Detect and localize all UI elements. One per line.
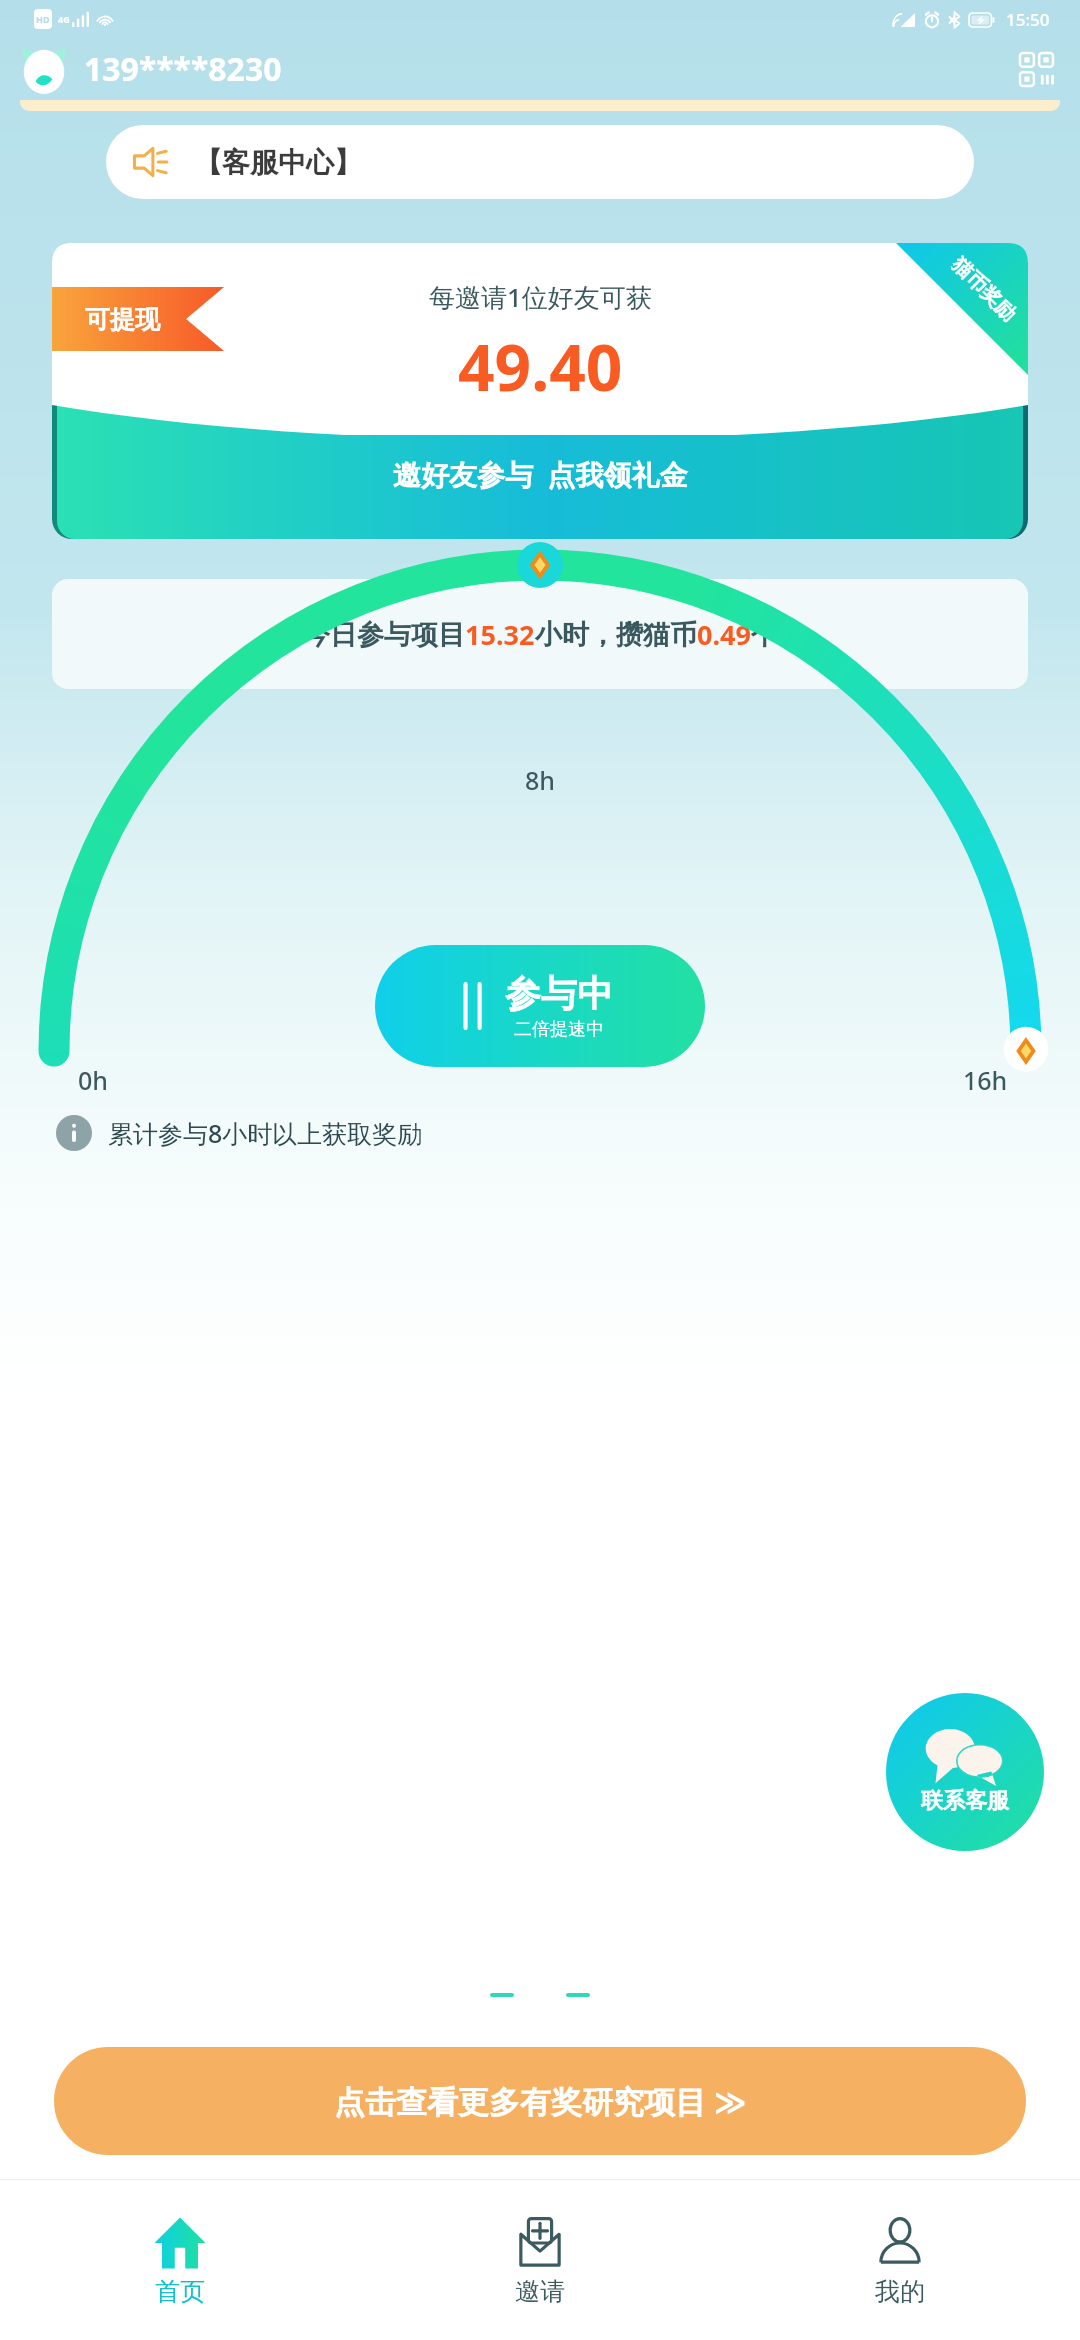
staticText: 首页 [155, 2276, 205, 2307]
button[interactable]: 邀好友参与 点我领礼金 [57, 289, 1023, 539]
staticText: 二倍提速中 [514, 1018, 604, 1041]
staticText: 邀请 [515, 2276, 565, 2307]
staticText: 个 [751, 618, 778, 652]
button[interactable]: 二维码 [1014, 47, 1058, 91]
staticText: 0.49 [697, 616, 751, 653]
staticText: 49.40 [458, 323, 623, 410]
staticText: 可提现 [85, 304, 160, 335]
staticText: 小时，攒猫币 [535, 618, 697, 652]
staticText: 【客服中心】 [194, 145, 362, 180]
staticText: 15.32 [465, 616, 535, 653]
staticText: 点击查看更多有奖研究项目 ≫ [334, 2080, 747, 2122]
button[interactable]: 头像 [18, 43, 70, 95]
staticText: 累计参与8小时以上获取奖励 [108, 1116, 423, 1150]
staticText: 我的 [875, 2276, 925, 2307]
button[interactable]: 【客服中心】 [106, 125, 974, 199]
staticText: 每邀请1位好友可获 [429, 279, 652, 315]
staticText: 15:50 [1006, 8, 1050, 31]
staticText: 4G [58, 13, 70, 25]
button[interactable]: 首页 [0, 2180, 360, 2340]
button[interactable]: 今日参与项目 [52, 579, 1028, 689]
button[interactable]: 参与中 [375, 945, 705, 1067]
staticText: 0h [78, 1063, 108, 1097]
staticText: 16h [963, 1063, 1008, 1097]
staticText: 联系客服 [921, 1787, 1009, 1815]
staticText: 猫币奖励 [947, 252, 1021, 327]
staticText: 8h [525, 763, 555, 797]
staticText: 邀好友参与 点我领礼金 [393, 455, 688, 493]
button[interactable]: 邀请 [360, 2180, 720, 2340]
staticText: 139****8230 [84, 47, 282, 91]
button[interactable]: 联系客服 [886, 1693, 1044, 1851]
staticText: 今日参与项目 [303, 618, 465, 652]
button[interactable]: 点击查看更多有奖研究项目 ≫ [54, 2047, 1026, 2155]
staticText: 参与中 [505, 971, 613, 1016]
staticText: HD [36, 13, 50, 25]
button[interactable]: 我的 [720, 2180, 1080, 2340]
